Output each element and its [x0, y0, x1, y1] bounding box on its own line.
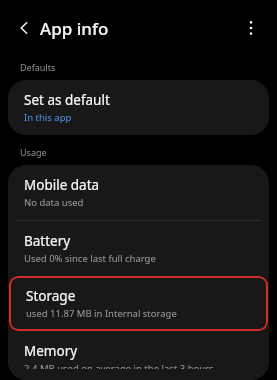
staticText: Usage — [20, 146, 47, 158]
staticText: Used 0% since last full charge — [24, 252, 156, 265]
staticText: Storage — [26, 287, 76, 305]
button[interactable]: Mobile data — [8, 165, 269, 220]
staticText: In this app — [24, 111, 72, 124]
button[interactable]: Set as default — [8, 80, 269, 135]
staticText: Memory — [24, 342, 78, 360]
staticText: used 11.87 MB in Internal storage — [26, 307, 177, 320]
button[interactable]: Battery — [8, 221, 269, 276]
staticText: App info — [40, 17, 109, 40]
button[interactable]: Back — [10, 14, 38, 42]
staticText: Battery — [24, 232, 71, 250]
button[interactable]: More options — [238, 15, 264, 41]
staticText: No data used — [24, 196, 84, 209]
staticText: Set as default — [24, 91, 110, 109]
staticText: Mobile data — [24, 176, 100, 194]
button[interactable]: Storage — [10, 276, 268, 331]
staticText: 2.4 MB used on average in the last 3 hou… — [24, 362, 214, 369]
staticText: Defaults — [20, 61, 56, 73]
button[interactable]: Memory — [8, 331, 269, 380]
